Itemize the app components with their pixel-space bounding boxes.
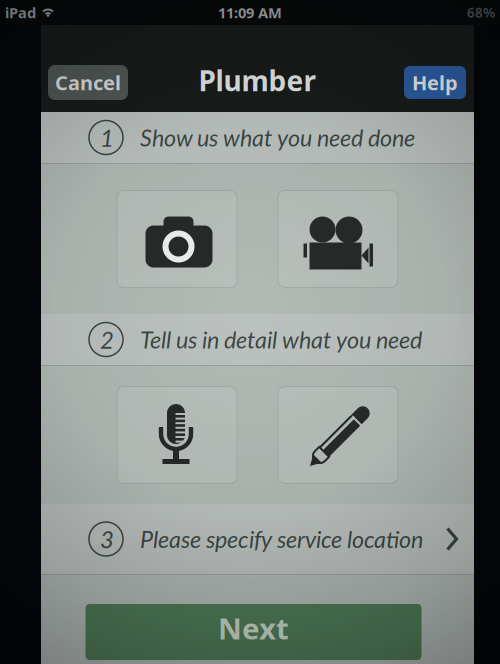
button[interactable]: Record a video [278, 190, 398, 287]
staticText: Please specify service location [140, 525, 423, 553]
button[interactable]: Cancel [48, 65, 128, 100]
staticText: 2 [100, 325, 114, 354]
staticText: iPad [5, 3, 36, 22]
staticText: 1 [100, 123, 114, 152]
staticText: 11:09 AM [218, 3, 282, 22]
staticText: Tell us in detail what you need [140, 325, 422, 353]
staticText: 68% [467, 4, 495, 21]
staticText: Next [218, 608, 289, 647]
button[interactable]: Help [404, 66, 466, 99]
staticText: 3 [100, 525, 114, 553]
staticText: Cancel [55, 69, 121, 96]
button[interactable]: 3 [41, 504, 474, 574]
staticText: Show us what you need done [140, 123, 415, 151]
button[interactable]: Take a photo [117, 190, 237, 287]
button[interactable]: Type a description [278, 386, 398, 483]
button[interactable]: Record audio [117, 386, 237, 483]
button[interactable]: Next [89, 604, 425, 660]
staticText: Help [412, 69, 458, 96]
staticText: Plumber [198, 62, 316, 99]
